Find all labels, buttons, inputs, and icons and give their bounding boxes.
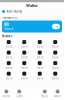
staticText: Item xyxy=(52,77,58,80)
button[interactable]: More xyxy=(51,89,64,98)
button[interactable]: Item xyxy=(1,51,16,59)
button[interactable]: Add money xyxy=(0,8,64,14)
staticText: Shop xyxy=(41,94,48,98)
staticText: Item xyxy=(6,45,12,48)
button[interactable]: Shop xyxy=(38,89,51,98)
staticText: Cards xyxy=(16,94,23,98)
staticText: Services xyxy=(2,34,12,38)
staticText: Item xyxy=(52,66,58,70)
staticText: Item xyxy=(6,77,12,80)
button[interactable]: Item xyxy=(32,40,47,48)
staticText: Pay xyxy=(54,25,58,28)
button[interactable]: Item xyxy=(47,72,63,80)
staticText: Item xyxy=(37,45,43,48)
staticText: Item xyxy=(52,56,58,59)
button[interactable]: Item xyxy=(1,61,16,70)
button[interactable]: Item xyxy=(32,72,47,80)
button[interactable]: Item xyxy=(16,61,32,70)
staticText: Item xyxy=(21,77,27,80)
staticText: Balance xyxy=(4,27,14,31)
staticText: Home xyxy=(2,94,10,98)
button[interactable]: Item xyxy=(47,40,63,48)
button[interactable]: Item xyxy=(32,51,47,59)
staticText: Item xyxy=(21,66,27,70)
button[interactable]: Item xyxy=(16,51,32,59)
button[interactable]: Item xyxy=(32,61,47,70)
button[interactable]: Item xyxy=(1,40,16,48)
staticText: Item xyxy=(6,56,12,59)
staticText: Item xyxy=(21,56,27,59)
staticText: Item xyxy=(37,77,43,80)
button[interactable]: Transactions xyxy=(0,14,64,20)
staticText: More xyxy=(54,94,61,98)
staticText: Item xyxy=(21,45,27,48)
staticText: Item xyxy=(52,45,58,48)
button[interactable]: Item xyxy=(47,51,63,59)
staticText: Wallet xyxy=(26,3,38,8)
button[interactable]: Balance xyxy=(2,20,62,32)
button[interactable]: Item xyxy=(47,61,63,70)
button[interactable]: Cards xyxy=(13,89,26,98)
staticText: Item xyxy=(37,66,43,70)
staticText: Add money xyxy=(6,10,21,13)
button[interactable]: Item xyxy=(16,72,32,80)
staticText: Transactions xyxy=(2,16,17,19)
button[interactable]: Item xyxy=(1,72,16,80)
button[interactable]: Item xyxy=(16,40,32,48)
staticText: Item xyxy=(37,56,43,59)
staticText: Item xyxy=(6,66,12,70)
button[interactable]: Home xyxy=(0,89,13,98)
